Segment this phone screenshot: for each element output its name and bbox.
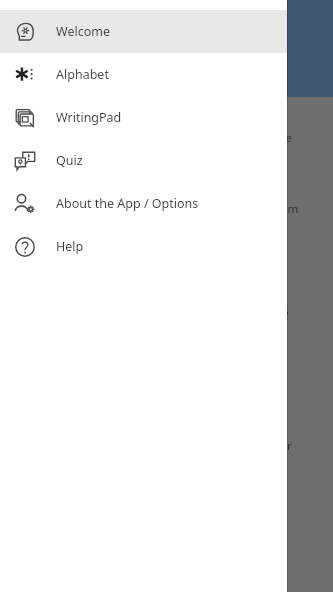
button[interactable]: WritingPad bbox=[0, 96, 287, 139]
staticText: CE and was developed from the Brahmi scr… bbox=[18, 201, 299, 217]
staticText: About the App / Options bbox=[56, 195, 199, 212]
button[interactable]: Alphabet bbox=[0, 53, 287, 96]
staticText: accompanying vowel sign. It is written l… bbox=[18, 341, 288, 357]
staticText: Sanskrit language. It is an abugida alph… bbox=[18, 149, 259, 165]
button[interactable]: Welcome bbox=[0, 10, 287, 53]
other: About the App / Options bbox=[14, 193, 36, 215]
staticText: languages including Hindi, Marathi, Nepa… bbox=[18, 130, 292, 146]
button[interactable]: Quiz bbox=[0, 139, 287, 182]
staticText: The Devanagari script is used to write o… bbox=[18, 111, 271, 127]
staticText: Welcome bbox=[56, 23, 110, 40]
staticText: Quiz bbox=[56, 152, 83, 169]
other: Help bbox=[14, 236, 36, 258]
staticText: Help bbox=[56, 238, 84, 255]
other: Welcome bbox=[14, 21, 36, 43]
other: Quiz bbox=[14, 150, 36, 172]
other: Alphabet bbox=[14, 64, 36, 86]
staticText: WritingPad bbox=[56, 109, 122, 126]
staticText: Alphabet bbox=[56, 66, 109, 83]
staticText: Vowels, consonants and the conjunct char… bbox=[18, 438, 292, 454]
staticText: and is an abugida, meaning each consonan… bbox=[18, 303, 289, 319]
staticText: Devanagari is written from left to right… bbox=[18, 246, 276, 262]
staticText: Devanagari dates back to the first centu… bbox=[18, 182, 244, 198]
button[interactable]: Help bbox=[0, 225, 287, 268]
other: WritingPad bbox=[14, 107, 36, 129]
button[interactable]: About the App / Options bbox=[0, 182, 287, 225]
